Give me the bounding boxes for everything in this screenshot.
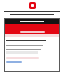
- button[interactable]: App icon: [29, 2, 36, 9]
- button[interactable]: [6, 61, 22, 63]
